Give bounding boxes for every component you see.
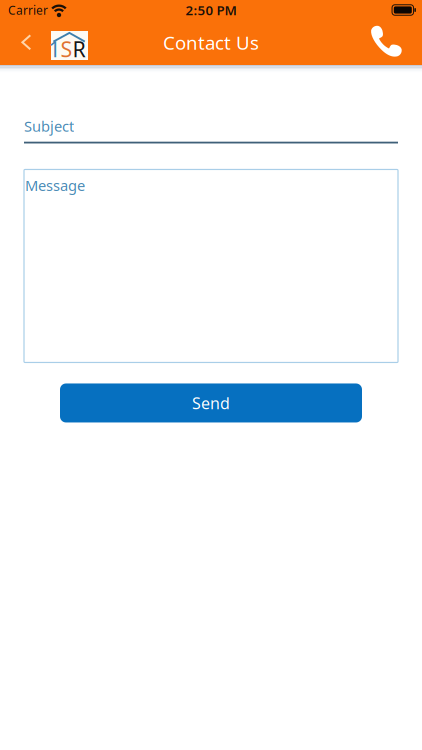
button[interactable]: Send [60,383,362,422]
staticText: Contact Us [163,30,259,55]
staticText: Carrier [8,2,48,18]
staticText: S [60,35,72,63]
staticText: 1 [48,35,60,63]
button[interactable]: Back [10,20,32,65]
staticText: Subject [24,116,74,136]
staticText: Send [192,392,230,414]
staticText: 2:50 PM [185,1,236,19]
staticText: R [72,35,85,63]
button[interactable]: Call [367,20,411,65]
staticText: Message [25,175,85,195]
